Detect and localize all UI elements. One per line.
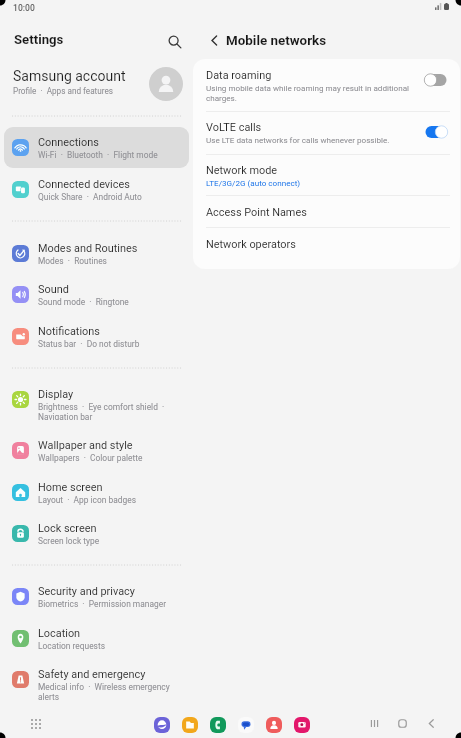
- staticText: Screen lock type: [38, 536, 189, 546]
- button[interactable]: My Files: [182, 717, 198, 733]
- button[interactable]: Home screen: [4, 472, 189, 513]
- button[interactable]: Samsung account: [0, 62, 193, 108]
- button[interactable]: Notifications: [4, 316, 189, 357]
- button[interactable]: Connections: [4, 127, 189, 168]
- staticText: Wallpapers · Colour palette: [38, 453, 189, 463]
- staticText: Modes and Routines: [38, 242, 138, 255]
- button[interactable]: VoLTE calls: [194, 115, 460, 157]
- button[interactable]: Data roaming: [194, 63, 460, 105]
- button[interactable]: Sound: [4, 274, 189, 315]
- staticText: Samsung account: [13, 68, 126, 84]
- staticText: Network operators: [206, 238, 296, 251]
- staticText: Connected devices: [38, 178, 130, 191]
- button[interactable]: Settings: [14, 32, 64, 47]
- staticText: VoLTE calls: [206, 121, 262, 134]
- button[interactable]: Safety and emergency: [4, 659, 189, 700]
- staticText: Home screen: [38, 481, 103, 494]
- button[interactable]: Access Point Names: [194, 200, 460, 232]
- staticText: Profile · Apps and features: [13, 86, 114, 96]
- button[interactable]: Connected devices: [4, 169, 189, 210]
- button[interactable]: Recents: [366, 715, 383, 732]
- button[interactable]: Network mode: [194, 158, 460, 200]
- staticText: Network mode: [206, 164, 278, 177]
- staticText: Medical info · Wireless emergency alerts: [38, 682, 189, 700]
- button[interactable]: Switch off: [423, 72, 449, 88]
- button[interactable]: Back: [423, 715, 440, 732]
- button[interactable]: Lock screen: [4, 513, 189, 554]
- staticText: 10:00: [13, 3, 35, 13]
- button[interactable]: Internet: [154, 717, 170, 733]
- button[interactable]: Messages: [238, 717, 254, 733]
- staticText: Connections: [38, 136, 99, 149]
- staticText: Wi-Fi · Bluetooth · Flight mode: [38, 150, 189, 160]
- staticText: Layout · App icon badges: [38, 495, 189, 505]
- staticText: Wallpaper and style: [38, 439, 133, 452]
- staticText: Data roaming: [206, 69, 272, 82]
- button[interactable]: Gallery: [294, 717, 310, 733]
- staticText: LTE/3G/2G (auto connect): [206, 178, 414, 187]
- button[interactable]: Display: [4, 379, 189, 420]
- staticText: Access Point Names: [206, 206, 307, 219]
- staticText: Status bar · Do not disturb: [38, 339, 189, 349]
- staticText: Brightness · Eye comfort shield · Naviga…: [38, 402, 189, 420]
- staticText: Display: [38, 388, 74, 401]
- button[interactable]: Location: [4, 618, 189, 659]
- staticText: Location requests: [38, 641, 189, 651]
- staticText: Lock screen: [38, 522, 97, 535]
- staticText: Sound mode · Ringtone: [38, 297, 189, 307]
- staticText: Safety and emergency: [38, 668, 146, 681]
- staticText: Quick Share · Android Auto: [38, 192, 189, 202]
- staticText: Biometrics · Permission manager: [38, 599, 189, 609]
- button[interactable]: Security and privacy: [4, 576, 189, 617]
- button[interactable]: Mobile networks: [226, 33, 327, 49]
- button[interactable]: Contacts: [266, 717, 282, 733]
- button[interactable]: Switch on: [423, 124, 449, 140]
- staticText: Modes · Routines: [38, 256, 189, 266]
- staticText: Using mobile data while roaming may resu…: [206, 83, 414, 103]
- staticText: Location: [38, 627, 81, 640]
- staticText: Use LTE data networks for calls whenever…: [206, 135, 414, 144]
- staticText: Notifications: [38, 325, 100, 338]
- button[interactable]: Modes and Routines: [4, 233, 189, 274]
- button[interactable]: Back: [203, 29, 225, 51]
- button[interactable]: Apps: [28, 716, 44, 732]
- button[interactable]: Network operators: [194, 232, 460, 264]
- button[interactable]: Wallpaper and style: [4, 430, 189, 471]
- staticText: Security and privacy: [38, 585, 135, 598]
- button[interactable]: Phone: [210, 717, 226, 733]
- button[interactable]: Search: [162, 29, 188, 55]
- staticText: Sound: [38, 283, 69, 296]
- button[interactable]: Home: [394, 715, 411, 732]
